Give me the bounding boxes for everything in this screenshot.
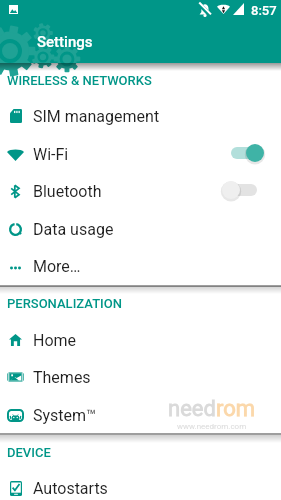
button[interactable]: SIM management bbox=[0, 97, 281, 135]
staticText: More… bbox=[33, 257, 81, 276]
staticText: need bbox=[168, 396, 216, 422]
staticText: www.needrom.com bbox=[177, 422, 247, 431]
button[interactable]: Wi-Fi bbox=[0, 135, 281, 173]
staticText: PERSONALIZATION bbox=[7, 296, 122, 311]
button[interactable]: More… bbox=[0, 247, 281, 285]
staticText: WIRELESS & NETWORKS bbox=[7, 73, 152, 88]
staticText: 8:57 bbox=[251, 3, 277, 18]
staticText: rom bbox=[216, 396, 256, 422]
button[interactable]: Autostarts bbox=[0, 469, 281, 500]
staticText: Wi-Fi bbox=[33, 145, 69, 164]
staticText: Bluetooth bbox=[33, 182, 102, 201]
staticText: Home bbox=[33, 331, 77, 350]
staticText: Data usage bbox=[33, 220, 114, 239]
staticText: Autostarts bbox=[33, 479, 108, 498]
staticText: Settings bbox=[37, 33, 93, 51]
staticText: DEVICE bbox=[7, 445, 51, 460]
button[interactable]: Themes bbox=[0, 358, 281, 396]
button[interactable]: Wi-Fi toggle bbox=[77, 135, 281, 173]
button[interactable]: Data usage bbox=[0, 210, 281, 248]
button[interactable]: Bluetooth toggle bbox=[110, 172, 281, 210]
staticText: Themes bbox=[33, 368, 91, 387]
staticText: SIM management bbox=[33, 107, 160, 126]
button[interactable]: Bluetooth bbox=[0, 172, 281, 210]
button[interactable]: System™ bbox=[0, 396, 281, 434]
staticText: System™ bbox=[33, 406, 97, 425]
button[interactable]: Home bbox=[0, 321, 281, 359]
